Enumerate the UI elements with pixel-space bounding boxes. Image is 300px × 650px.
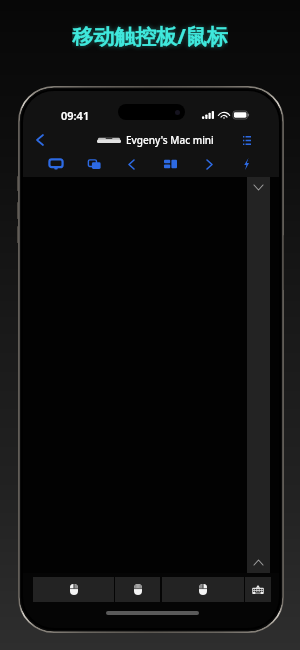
button[interactable]: Next — [197, 152, 221, 176]
button[interactable]: Scroll — [247, 177, 270, 573]
staticText: 移动触控板/鼠标 — [72, 22, 228, 51]
button[interactable]: Right click — [162, 577, 244, 602]
button[interactable]: Sessions — [237, 130, 257, 150]
button[interactable]: Back — [30, 130, 50, 150]
button[interactable]: Windows — [158, 152, 182, 176]
button[interactable]: Keyboard — [245, 577, 271, 602]
button[interactable]: Trackpad — [23, 177, 279, 573]
button[interactable]: Power — [234, 152, 258, 176]
button[interactable]: Display — [44, 152, 68, 176]
staticText: Evgeny's Mac mini — [126, 133, 214, 147]
staticText: 移动触控板/鼠标 — [72, 22, 228, 51]
button[interactable]: Previous — [119, 152, 143, 176]
button[interactable]: Middle click — [115, 577, 160, 602]
button[interactable]: Left click — [33, 577, 114, 602]
staticText: 09:41 — [61, 108, 90, 123]
button[interactable]: Screens — [82, 152, 106, 176]
